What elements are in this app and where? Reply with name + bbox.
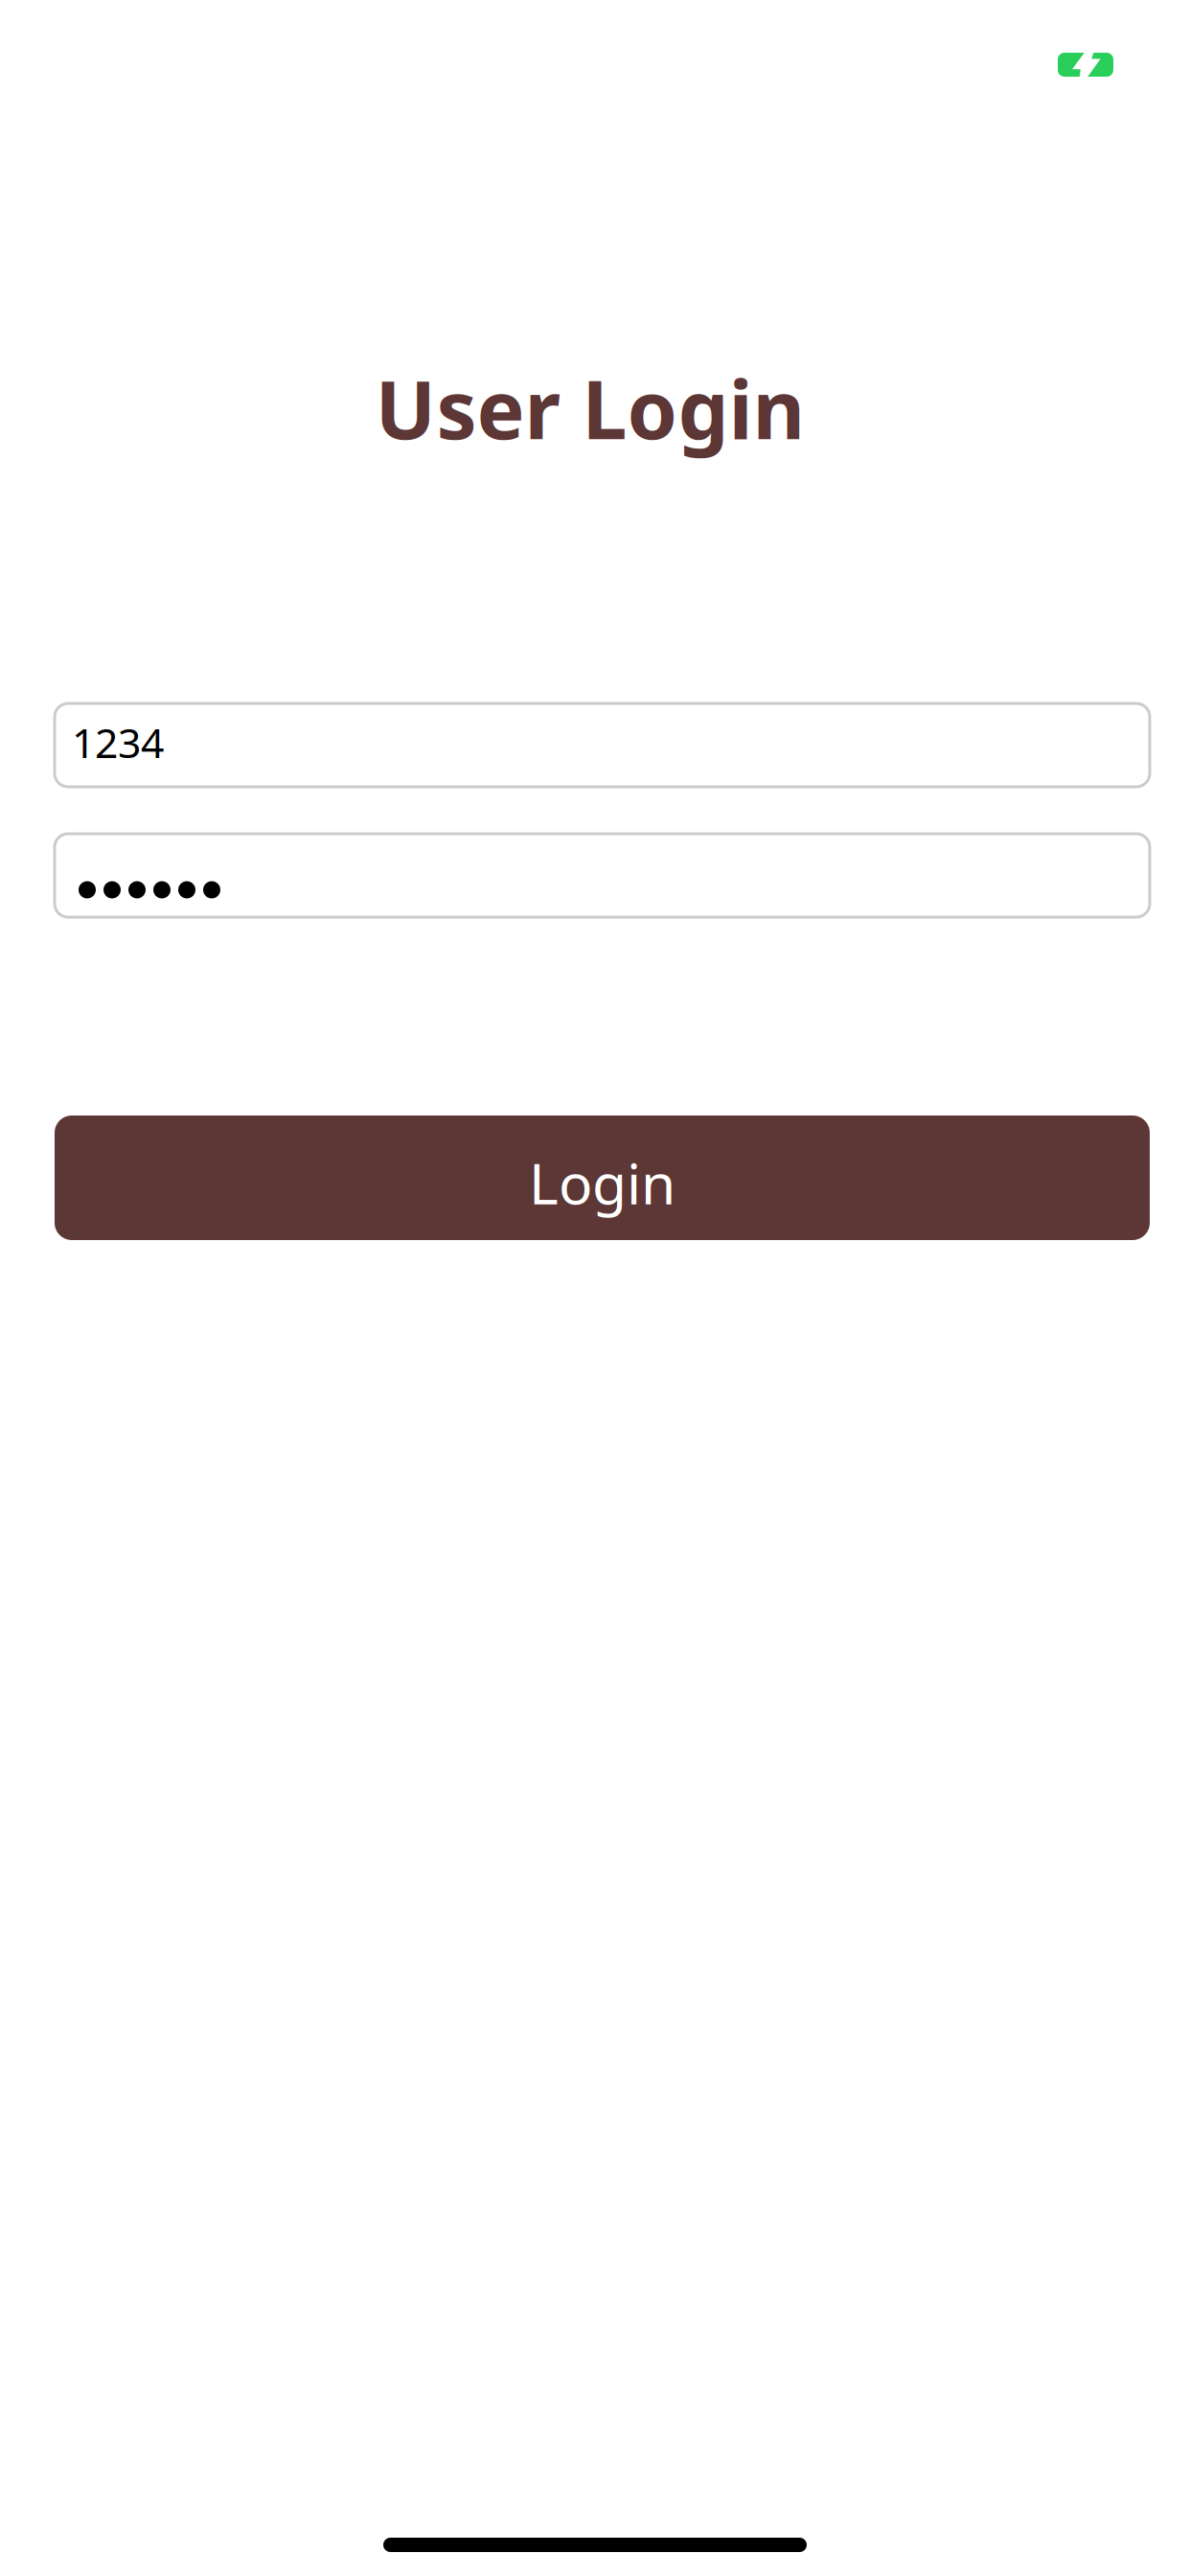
button[interactable]: Username [55, 703, 1150, 787]
staticText: 1234 [72, 715, 164, 769]
button[interactable]: Login [55, 1115, 1150, 1240]
button[interactable]: Password [55, 834, 1150, 917]
staticText: User Login [375, 355, 805, 461]
staticText: Login [529, 1145, 675, 1220]
